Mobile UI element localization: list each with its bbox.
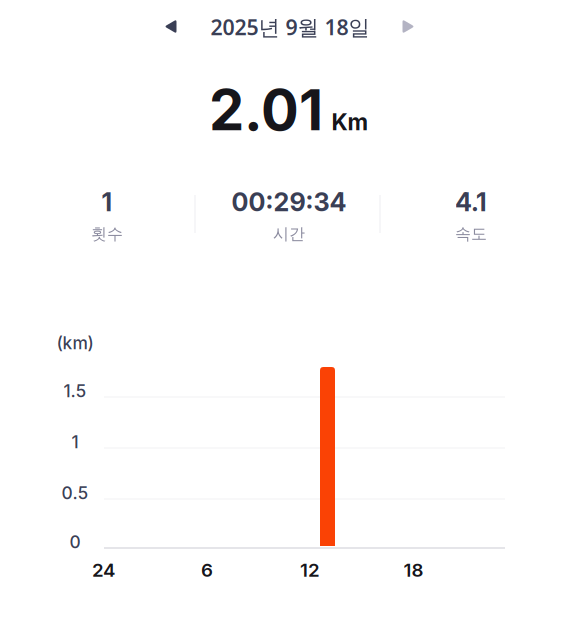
staticText: 2025년 9월 18일 <box>210 12 369 42</box>
staticText: (km) <box>56 332 93 353</box>
staticText: 0 <box>69 531 80 552</box>
staticText: 횟수 <box>91 224 123 244</box>
staticText: 00:29:34 <box>231 187 346 217</box>
staticText: 1.5 <box>63 380 86 401</box>
staticText: 0.5 <box>61 482 88 503</box>
staticText: 속도 <box>455 224 487 244</box>
button[interactable]: Next day <box>388 5 428 47</box>
staticText: 1 <box>71 431 78 452</box>
staticText: 시간 <box>273 224 305 244</box>
staticText: 12 <box>300 559 320 581</box>
staticText: 18 <box>403 559 423 581</box>
staticText: 24 <box>92 559 115 581</box>
staticText: 1 <box>101 187 112 217</box>
staticText: Km <box>331 108 368 136</box>
button[interactable]: Previous day <box>150 5 190 47</box>
staticText: 4.1 <box>455 187 487 217</box>
staticText: 2.01 <box>209 76 323 144</box>
staticText: 6 <box>201 559 213 581</box>
